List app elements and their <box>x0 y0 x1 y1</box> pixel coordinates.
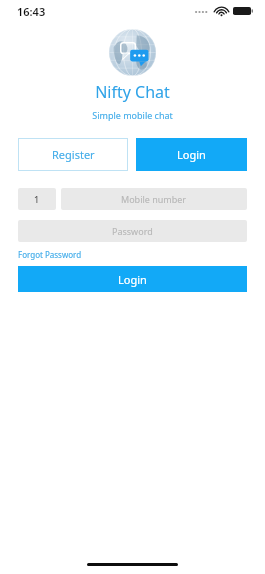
staticText: Login <box>177 147 206 162</box>
staticText: Mobile number <box>121 193 187 205</box>
button[interactable]: 1 <box>18 188 56 210</box>
staticText: Forgot Password <box>18 249 82 260</box>
other: Nifty Chat logo <box>109 29 156 76</box>
staticText: Register <box>52 147 95 162</box>
staticText: Nifty Chat <box>0 81 265 103</box>
button[interactable]: Login <box>18 266 247 292</box>
button[interactable]: Login <box>136 138 247 171</box>
staticText: Password <box>112 225 153 237</box>
button[interactable]: Mobile number <box>61 188 247 210</box>
staticText: 16:43 <box>17 4 46 19</box>
button[interactable]: Forgot Password <box>18 249 82 260</box>
staticText: Simple mobile chat <box>0 109 265 121</box>
button[interactable]: Register <box>18 138 128 171</box>
button[interactable]: Password <box>18 220 247 242</box>
staticText: Login <box>118 272 147 287</box>
staticText: 1 <box>34 193 40 205</box>
